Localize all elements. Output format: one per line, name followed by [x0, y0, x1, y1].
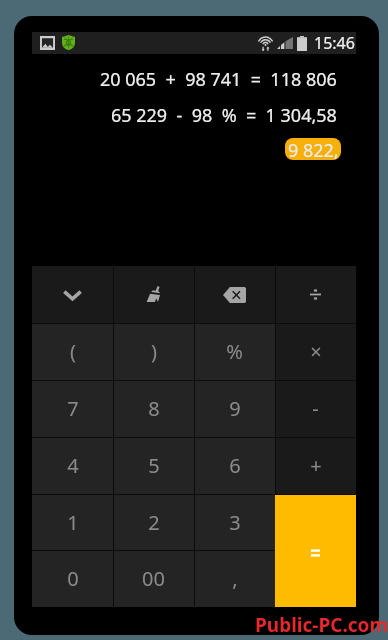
button[interactable]: 4	[32, 437, 113, 494]
staticText: 1	[67, 509, 79, 536]
button[interactable]: 8	[113, 380, 194, 437]
button[interactable]: 9	[194, 380, 275, 437]
staticText: 0	[67, 565, 79, 592]
button[interactable]: 2	[113, 494, 194, 550]
button[interactable]: -	[275, 380, 356, 437]
button[interactable]: )	[113, 323, 194, 380]
staticText: ,	[232, 565, 238, 592]
button[interactable]: 6	[194, 437, 275, 494]
staticText: 2	[148, 509, 160, 536]
staticText: ×	[310, 338, 322, 365]
staticText: 3	[229, 509, 241, 536]
button[interactable]: 5	[113, 437, 194, 494]
staticText: 9	[229, 395, 241, 422]
button[interactable]: 9 822,	[285, 138, 341, 160]
button[interactable]: Divide	[275, 266, 356, 323]
staticText: 5	[148, 452, 160, 479]
staticText: 9 822,	[288, 138, 339, 160]
staticText: 4	[67, 452, 79, 479]
button[interactable]: 1	[32, 494, 113, 550]
button[interactable]: Clear all	[113, 266, 194, 323]
button[interactable]: (	[32, 323, 113, 380]
button[interactable]: 3	[194, 494, 275, 550]
staticText: 7	[67, 395, 79, 422]
staticText: 65 229 - 98 % = 1 304,58	[111, 103, 337, 128]
staticText: %	[226, 338, 243, 365]
button[interactable]: ,	[194, 550, 275, 607]
button[interactable]: +	[275, 437, 356, 494]
button[interactable]: 7	[32, 380, 113, 437]
button[interactable]: Collapse keypad	[32, 266, 113, 323]
staticText: -	[312, 395, 319, 422]
staticText: 15:46	[314, 32, 355, 54]
staticText: 00	[142, 565, 165, 592]
staticText: (	[70, 338, 76, 365]
button[interactable]: 0	[32, 550, 113, 607]
staticText: )	[151, 338, 157, 365]
button[interactable]: %	[194, 323, 275, 380]
button[interactable]: 00	[113, 550, 194, 607]
staticText: Public-PC.com	[255, 612, 388, 638]
button[interactable]: Equals	[275, 494, 356, 607]
staticText: +	[310, 452, 322, 479]
button[interactable]: ×	[275, 323, 356, 380]
staticText: 6	[229, 452, 241, 479]
staticText: 8	[148, 395, 160, 422]
staticText: 20 065 + 98 741 = 118 806	[100, 67, 337, 92]
button[interactable]: Backspace	[194, 266, 275, 323]
